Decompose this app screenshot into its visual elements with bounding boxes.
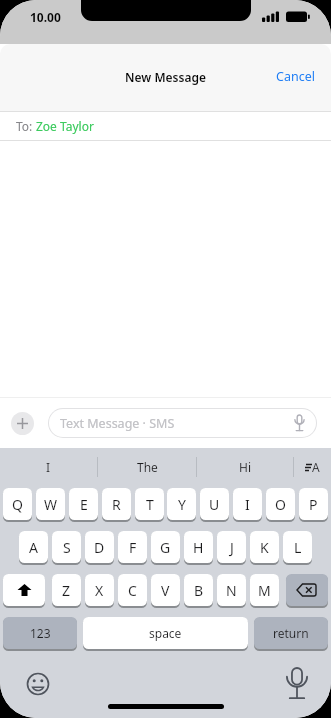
button[interactable]: R <box>102 488 131 521</box>
staticText: Y <box>178 495 186 514</box>
button[interactable]: G <box>151 531 180 564</box>
staticText: W <box>44 495 58 514</box>
staticText: D <box>94 538 105 557</box>
button[interactable]: D <box>85 531 114 564</box>
staticText: V <box>161 581 170 600</box>
staticText: New Message <box>125 69 206 85</box>
button[interactable]: return <box>254 617 328 650</box>
button[interactable]: E <box>69 488 98 521</box>
button[interactable]: A <box>19 531 48 564</box>
button[interactable]: space <box>83 617 248 650</box>
staticText: K <box>260 538 269 557</box>
staticText: I <box>245 495 250 514</box>
staticText: return <box>273 625 309 641</box>
staticText: M <box>258 581 271 600</box>
button[interactable]: I <box>233 488 262 521</box>
button[interactable]: B <box>184 574 213 607</box>
button[interactable]: O <box>266 488 295 521</box>
button[interactable]: M <box>250 574 279 607</box>
button[interactable]: J <box>217 531 246 564</box>
staticText: R <box>112 495 121 514</box>
staticText: P <box>309 495 318 514</box>
staticText: T <box>146 495 154 514</box>
button[interactable]: I <box>0 448 97 486</box>
staticText: O <box>275 495 286 514</box>
button[interactable]: 123 <box>3 617 77 650</box>
button[interactable]: Hi <box>197 448 293 486</box>
staticText: Zoe Taylor <box>36 118 94 134</box>
button[interactable] <box>286 574 328 607</box>
button[interactable]: X <box>85 574 114 607</box>
staticText: 10.00 <box>30 9 61 25</box>
staticText: J <box>230 538 234 557</box>
staticText: Text Message · SMS <box>60 415 175 432</box>
button[interactable]: P <box>299 488 328 521</box>
button[interactable]: V <box>151 574 180 607</box>
button[interactable]: H <box>184 531 213 564</box>
staticText: The <box>137 459 158 475</box>
button[interactable]: F <box>118 531 147 564</box>
staticText: X <box>95 581 104 600</box>
staticText: B <box>194 581 204 600</box>
button[interactable]: Y <box>167 488 196 521</box>
staticText: 123 <box>30 625 51 641</box>
staticText: F <box>129 538 137 557</box>
staticText: U <box>209 495 220 514</box>
staticText: Q <box>12 495 23 514</box>
staticText: Z <box>62 581 71 600</box>
button[interactable] <box>285 668 309 700</box>
button[interactable]: S <box>52 531 81 564</box>
staticText: A <box>312 459 320 475</box>
staticText: Hi <box>239 459 251 475</box>
staticText: L <box>294 538 302 557</box>
button[interactable]: The <box>98 448 196 486</box>
staticText: E <box>80 495 88 514</box>
button[interactable]: Text Message · SMS <box>49 409 316 437</box>
button[interactable]: K <box>250 531 279 564</box>
staticText: N <box>226 581 237 600</box>
button[interactable]: W <box>36 488 65 521</box>
staticText: H <box>193 538 204 557</box>
button[interactable]: T <box>135 488 164 521</box>
button[interactable]: A <box>294 448 331 486</box>
staticText: C <box>128 581 137 600</box>
button[interactable] <box>3 574 45 607</box>
staticText: To: <box>16 118 36 134</box>
button[interactable]: C <box>118 574 147 607</box>
button[interactable]: Z <box>52 574 81 607</box>
staticText: I <box>46 459 51 475</box>
button[interactable]: U <box>200 488 229 521</box>
staticText: S <box>63 538 71 557</box>
button[interactable]: L <box>283 531 312 564</box>
button[interactable]: To: <box>0 112 331 140</box>
staticText: Cancel <box>276 68 315 85</box>
button[interactable] <box>11 412 34 435</box>
staticText: G <box>160 538 171 557</box>
staticText: space <box>149 625 182 641</box>
button[interactable]: Q <box>3 488 32 521</box>
staticText: A <box>29 538 38 557</box>
button[interactable]: N <box>217 574 246 607</box>
button[interactable] <box>26 672 50 696</box>
button[interactable]: Cancel <box>276 69 331 86</box>
